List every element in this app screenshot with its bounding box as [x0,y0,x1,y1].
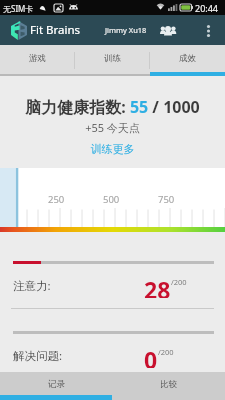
button[interactable]: Friends [157,20,178,41]
staticText: 250 [48,193,65,206]
staticText: +55 今天点 [0,120,225,135]
staticText: 记录 [48,379,65,390]
button[interactable]: 注意力: [0,261,225,298]
button[interactable]: 训练 [75,45,150,76]
staticText: 0 [144,344,158,368]
staticText: 28 [144,274,171,298]
button[interactable]: 记录 [0,372,112,400]
staticText: Fit Brains [30,22,81,38]
staticText: 20:44 [195,2,219,14]
button[interactable]: 训练更多 [0,142,225,156]
button[interactable]: More options [198,20,219,41]
button[interactable]: 比较 [112,372,225,400]
staticText: /200 [158,347,174,357]
button[interactable]: 成效 [150,45,225,76]
staticText: 解决问题: [13,348,63,364]
staticText: 500 [103,193,120,206]
staticText: 注意力: [13,278,51,294]
staticText: 无SIM卡 [3,3,34,14]
button[interactable]: 游戏 [0,45,75,76]
staticText: 训练 [104,53,121,64]
staticText: 脑力健康指数: 55 / 1000 [0,96,225,118]
staticText: 750 [158,193,175,206]
staticText: 游戏 [29,53,46,64]
staticText: 成效 [179,53,196,64]
button[interactable]: 解决问题: [0,331,225,368]
staticText: 比较 [160,379,177,390]
staticText: /200 [171,277,187,287]
staticText: Jimmy Xu18 [105,25,147,35]
